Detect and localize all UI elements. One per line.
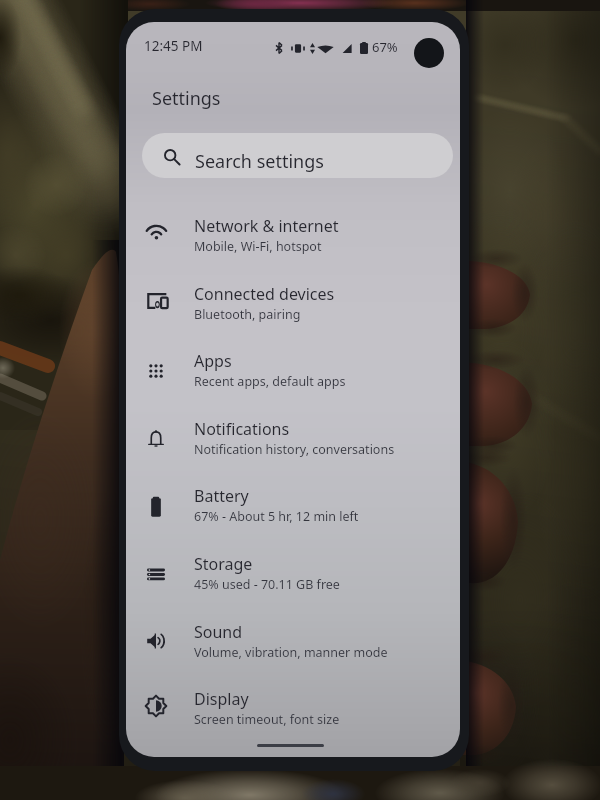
staticText: Network & internet [194, 215, 339, 237]
other: Bluetooth [274, 42, 284, 54]
button[interactable]: Network & internet [126, 203, 460, 270]
staticText: 45% used - 70.11 GB free [194, 576, 340, 593]
staticText: 67% - About 5 hr, 12 min left [194, 508, 359, 525]
staticText: Volume, vibration, manner mode [194, 644, 388, 661]
button[interactable]: Storage [126, 541, 460, 608]
staticText: Storage [194, 553, 253, 575]
button[interactable]: Apps [126, 338, 460, 405]
staticText: Notification history, conversations [194, 441, 395, 458]
button[interactable]: Sound [126, 609, 460, 676]
staticText: Sound [194, 621, 243, 643]
staticText: Battery [194, 485, 249, 507]
button[interactable]: Display [126, 676, 460, 743]
button[interactable]: Connected devices [126, 271, 460, 338]
staticText: Search settings [195, 149, 324, 174]
staticText: Screen timeout, font size [194, 711, 340, 728]
staticText: 67% [372, 38, 398, 56]
button[interactable]: Notifications [126, 406, 460, 473]
staticText: Notifications [194, 418, 290, 440]
button[interactable]: Battery [126, 473, 460, 540]
staticText: Connected devices [194, 283, 335, 305]
staticText: Apps [194, 350, 232, 372]
staticText: Display [194, 688, 249, 710]
staticText: Bluetooth, pairing [194, 306, 301, 323]
staticText: Settings [152, 86, 221, 111]
staticText: Recent apps, default apps [194, 373, 346, 390]
staticText: Mobile, Wi-Fi, hotspot [194, 238, 322, 255]
button[interactable]: Search settings [142, 133, 453, 178]
staticText: 12:45 PM [144, 37, 203, 55]
